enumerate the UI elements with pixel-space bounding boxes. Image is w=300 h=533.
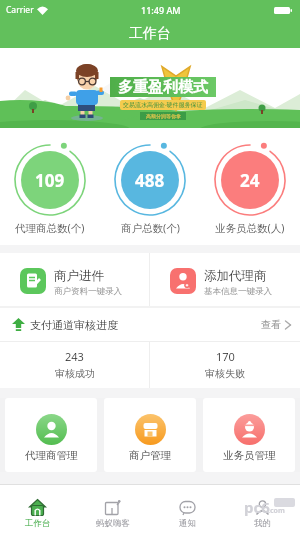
staticText: 170 [216,349,235,364]
staticText: 业务员管理 [223,449,276,462]
button[interactable]: 243 [0,342,149,388]
staticText: 多重盈利模式 [118,78,208,97]
staticText: 蚂蚁嗨客 [96,518,130,529]
staticText: 工作台 [25,518,51,529]
staticText: 交易流水高佣金·硬件服务保证 [123,101,203,109]
staticText: 109 [35,169,65,192]
staticText: 商户进件 [54,268,104,284]
staticText: 488 [135,169,165,192]
staticText: 代理商管理 [25,449,78,462]
button[interactable]: 添加代理商 [150,253,300,306]
button[interactable]: 488 [100,128,200,235]
staticText: 商户管理 [129,449,171,462]
staticText: 业务员总数(人) [215,221,285,235]
button[interactable]: 24 [200,128,300,235]
staticText: 支付通道审核进度 [30,318,118,332]
button[interactable]: 170 [150,342,300,388]
button[interactable]: 我的 [225,485,300,533]
staticText: Carrier [6,4,34,16]
staticText: 高额分润等你拿 [146,113,181,119]
staticText: 审核成功 [55,367,95,380]
staticText: 查看 [261,318,281,331]
button[interactable]: 商户进件 [0,253,149,306]
button[interactable]: 多重盈利模式 [0,48,300,128]
staticText: 243 [65,349,84,364]
button[interactable]: 蚂蚁嗨客 [75,485,150,533]
staticText: .com [268,506,285,516]
staticText: 基本信息一键录入 [204,286,272,297]
staticText: 添加代理商 [204,268,267,284]
staticText: 24 [240,169,260,192]
staticText: 代理商总数(个) [15,221,85,235]
button[interactable]: 业务员管理 [203,398,295,472]
staticText: 商户总数(个) [121,221,180,235]
button[interactable]: 代理商管理 [5,398,97,472]
staticText: 通知 [179,518,196,529]
button[interactable]: 工作台 [0,485,75,533]
button[interactable]: 商户管理 [104,398,196,472]
button[interactable]: 通知 [150,485,225,533]
staticText: 我的 [254,518,271,529]
staticText: 工作台 [129,25,171,43]
staticText: pc6 [244,497,270,517]
staticText: 审核失败 [205,367,245,380]
staticText: 商户资料一键录入 [54,286,122,297]
staticText: 11:49 AM [141,4,181,16]
button[interactable]: 支付通道审核进度 [0,308,300,341]
button[interactable]: 109 [0,128,100,235]
